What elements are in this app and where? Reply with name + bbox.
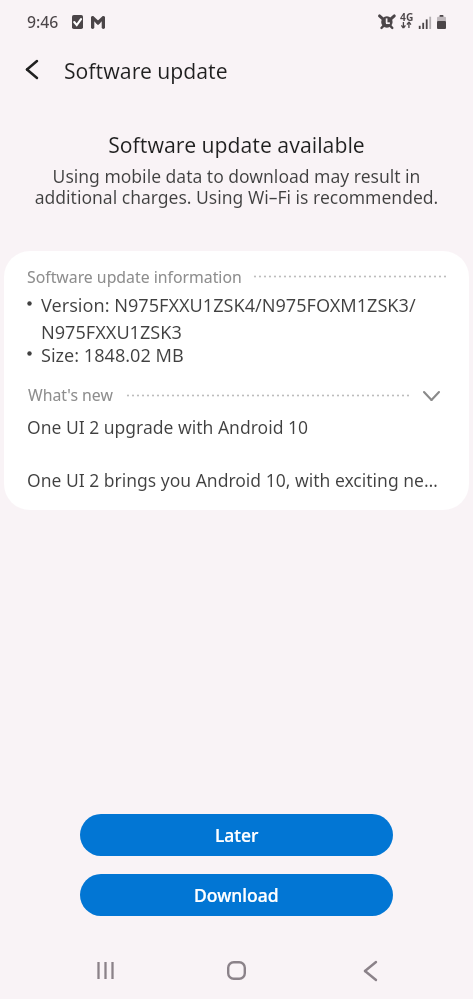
staticText: One UI 2 brings you Android 10, with exc… xyxy=(27,468,438,492)
button[interactable]: Download xyxy=(80,874,393,916)
staticText: Software update available xyxy=(0,130,473,159)
staticText: Download xyxy=(194,883,279,907)
staticText: Size: 1848.02 MB xyxy=(41,343,184,368)
staticText: One UI 2 upgrade with Android 10 xyxy=(27,415,308,439)
staticText: Version: N975FXXU1ZSK4/N975FOXM1ZSK3/ N9… xyxy=(41,293,416,344)
staticText: What's new xyxy=(28,384,113,406)
other: Expand xyxy=(424,392,439,400)
staticText: Later xyxy=(215,823,259,847)
button[interactable]: Navigate up xyxy=(7,46,55,94)
staticText: Using mobile data to download may result… xyxy=(16,164,457,210)
button[interactable]: Recent apps xyxy=(81,938,129,986)
button[interactable]: Back xyxy=(345,938,393,986)
staticText: Software update information xyxy=(27,266,242,288)
button[interactable]: Later xyxy=(80,814,393,856)
staticText: Software update xyxy=(64,56,228,85)
button[interactable]: Home xyxy=(213,938,261,986)
staticText: 4G xyxy=(400,10,414,24)
staticText: 9:46 xyxy=(27,11,59,33)
button[interactable]: What's new xyxy=(4,379,469,415)
